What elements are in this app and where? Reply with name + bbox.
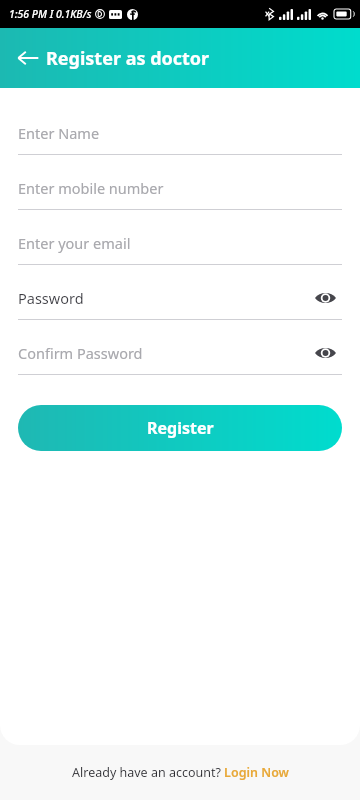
staticText: Enter mobile number	[18, 178, 164, 198]
staticText: Register	[147, 417, 214, 439]
button[interactable]: Already have an account? Login Now	[66, 760, 295, 785]
staticText: Register as doctor	[46, 46, 210, 71]
staticText: Password	[18, 288, 84, 308]
staticText: Enter your email	[18, 233, 131, 253]
staticText: Confirm Password	[18, 343, 143, 363]
staticText: 1:56 PM I 0.1KB/s	[9, 7, 92, 21]
staticText: Enter Name	[18, 123, 100, 143]
button[interactable]: Register	[18, 405, 342, 451]
staticText: Already have an account? Login Now	[72, 764, 289, 781]
button[interactable]: Back	[8, 38, 48, 78]
button[interactable]: Toggle password visibility	[308, 281, 342, 315]
button[interactable]: Toggle password visibility	[308, 336, 342, 370]
